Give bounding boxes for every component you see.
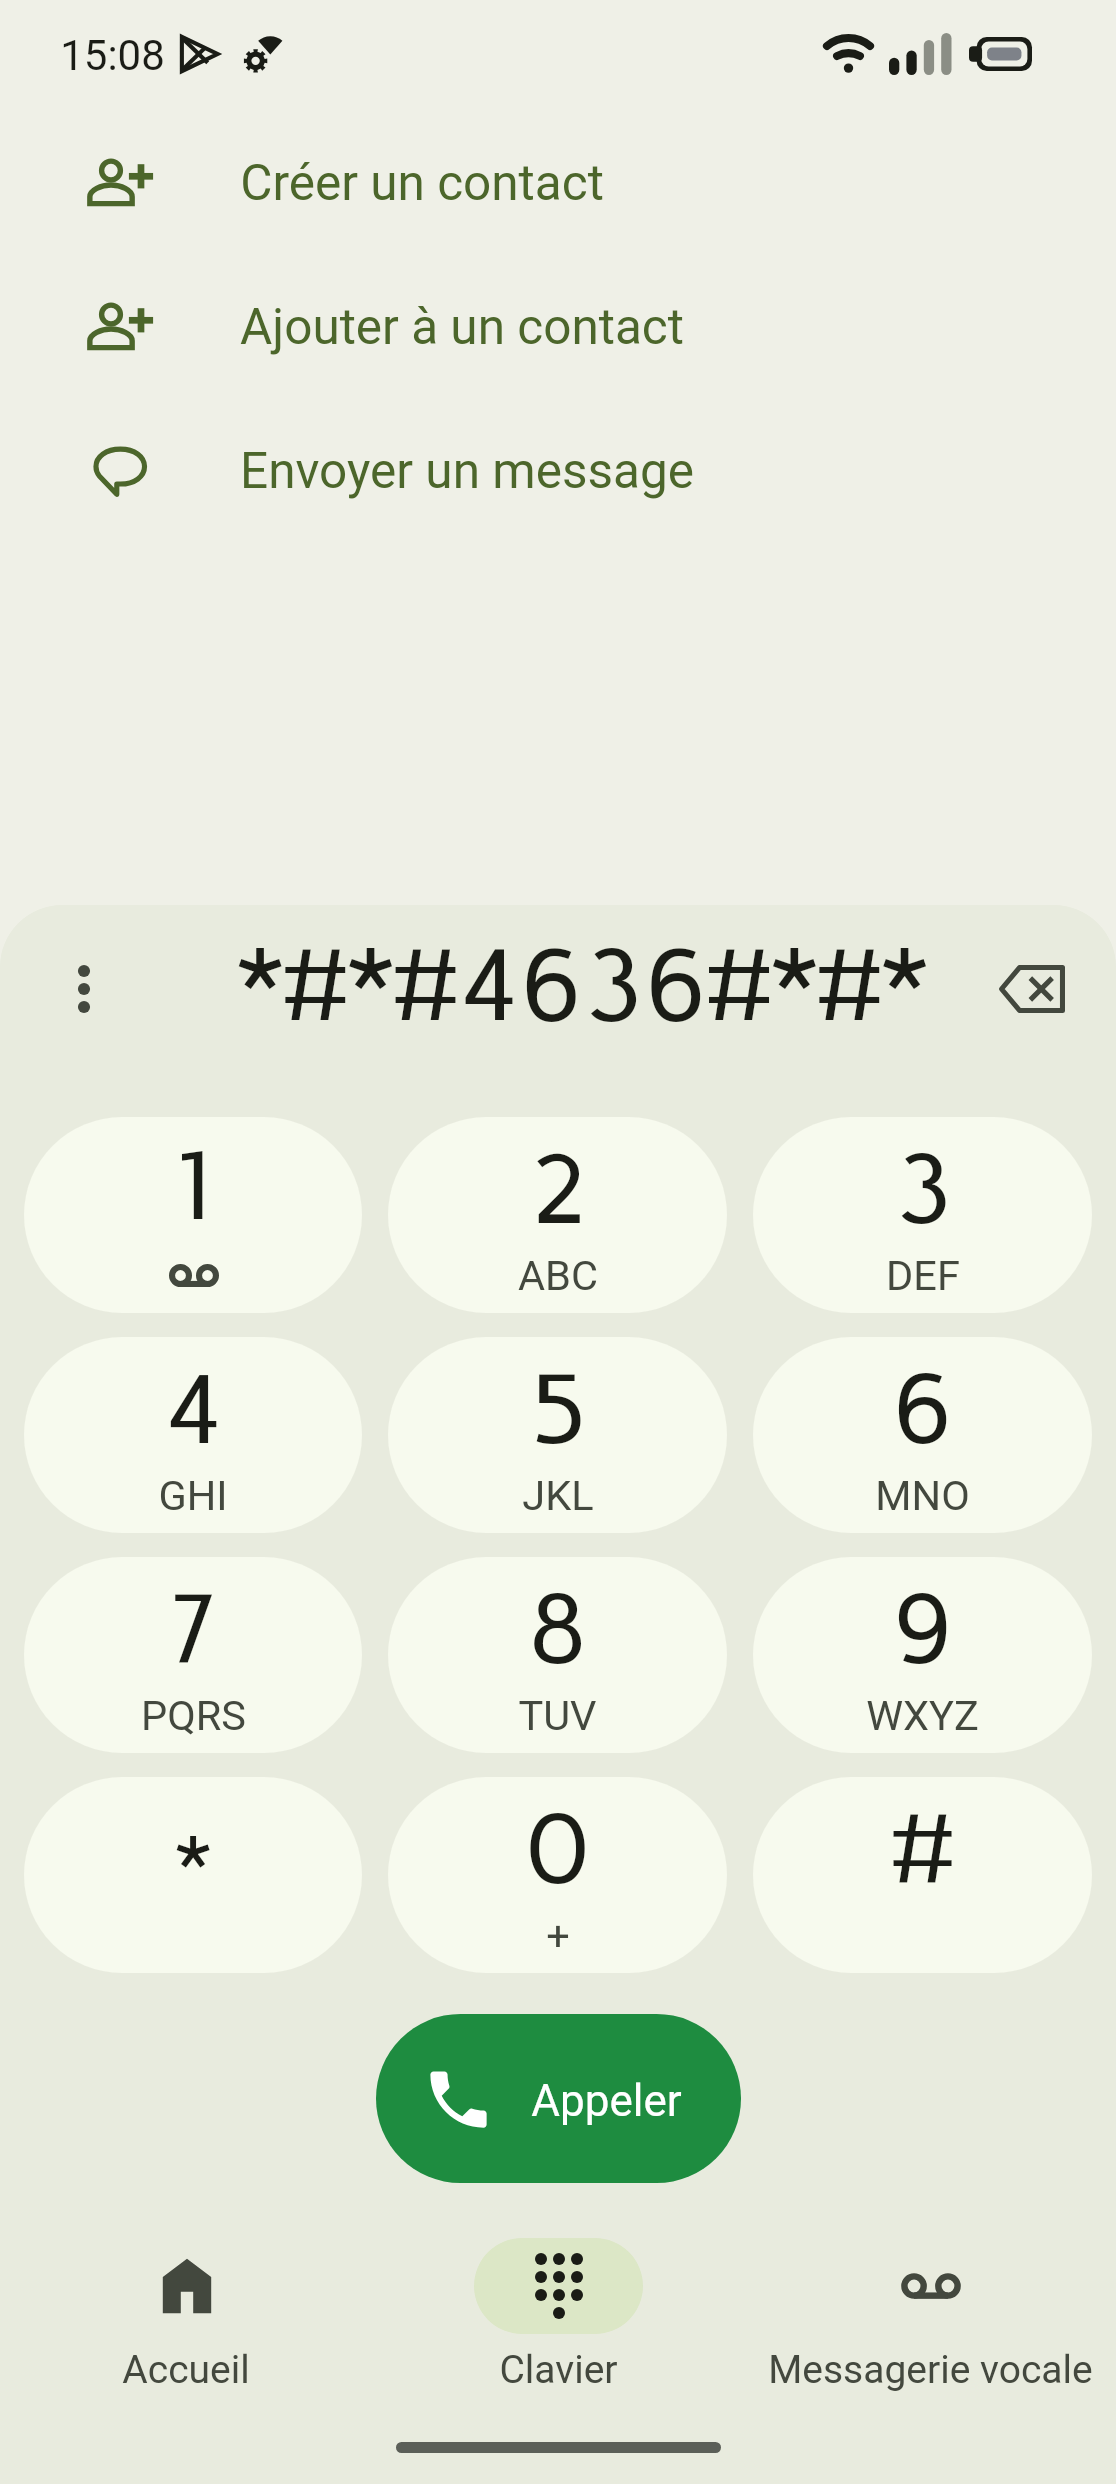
- staticText: GHI: [158, 1471, 228, 1520]
- staticText: JKL: [522, 1471, 594, 1520]
- staticText: DEF: [886, 1251, 960, 1300]
- staticText: 7: [163, 1571, 224, 1687]
- staticText: Messagerie vocale: [768, 2347, 1093, 2393]
- staticText: PQRS: [141, 1691, 246, 1740]
- button[interactable]: 4: [24, 1337, 362, 1533]
- staticText: 4: [163, 1351, 224, 1467]
- button[interactable]: 8: [388, 1557, 727, 1753]
- staticText: ABC: [518, 1251, 598, 1300]
- button[interactable]: Créer un contact: [0, 111, 1116, 255]
- staticText: 0: [527, 1791, 588, 1907]
- button[interactable]: 7: [24, 1557, 362, 1753]
- button[interactable]: 2: [388, 1117, 727, 1313]
- staticText: 8: [527, 1571, 588, 1687]
- button[interactable]: *: [24, 1777, 362, 1973]
- staticText: 6: [892, 1351, 953, 1467]
- staticText: 15:08: [60, 31, 165, 80]
- staticText: Appeler: [531, 2075, 682, 2127]
- button[interactable]: More options: [48, 953, 120, 1025]
- button[interactable]: Ajouter à un contact: [0, 255, 1116, 399]
- staticText: Envoyer un message: [240, 442, 694, 500]
- button[interactable]: 3: [753, 1117, 1092, 1313]
- staticText: 1: [165, 1127, 226, 1243]
- staticText: 2: [528, 1131, 589, 1247]
- staticText: Créer un contact: [240, 154, 604, 212]
- staticText: WXYZ: [866, 1691, 979, 1740]
- button[interactable]: 0: [388, 1777, 727, 1973]
- button[interactable]: Envoyer un message: [0, 399, 1116, 543]
- staticText: 3: [893, 1131, 954, 1247]
- staticText: 9: [892, 1571, 953, 1687]
- button[interactable]: Accueil: [0, 2220, 372, 2484]
- staticText: MNO: [875, 1471, 970, 1520]
- staticText: Ajouter à un contact: [240, 298, 684, 356]
- staticText: +: [546, 1911, 570, 1960]
- button[interactable]: Messagerie vocale: [744, 2220, 1116, 2484]
- button[interactable]: Appeler: [376, 2014, 741, 2183]
- staticText: TUV: [518, 1691, 597, 1740]
- staticText: Accueil: [122, 2347, 250, 2393]
- staticText: *: [175, 1819, 211, 1911]
- staticText: *#*#4636#*#*: [237, 925, 928, 1045]
- button[interactable]: #: [753, 1777, 1092, 1973]
- staticText: Clavier: [499, 2347, 618, 2393]
- button[interactable]: 9: [753, 1557, 1092, 1753]
- button[interactable]: 5: [388, 1337, 727, 1533]
- button[interactable]: 6: [753, 1337, 1092, 1533]
- button[interactable]: Backspace: [996, 953, 1068, 1025]
- staticText: #: [891, 1791, 954, 1907]
- button[interactable]: Clavier: [372, 2220, 744, 2484]
- staticText: 5: [528, 1351, 589, 1467]
- button[interactable]: 1: [24, 1117, 362, 1313]
